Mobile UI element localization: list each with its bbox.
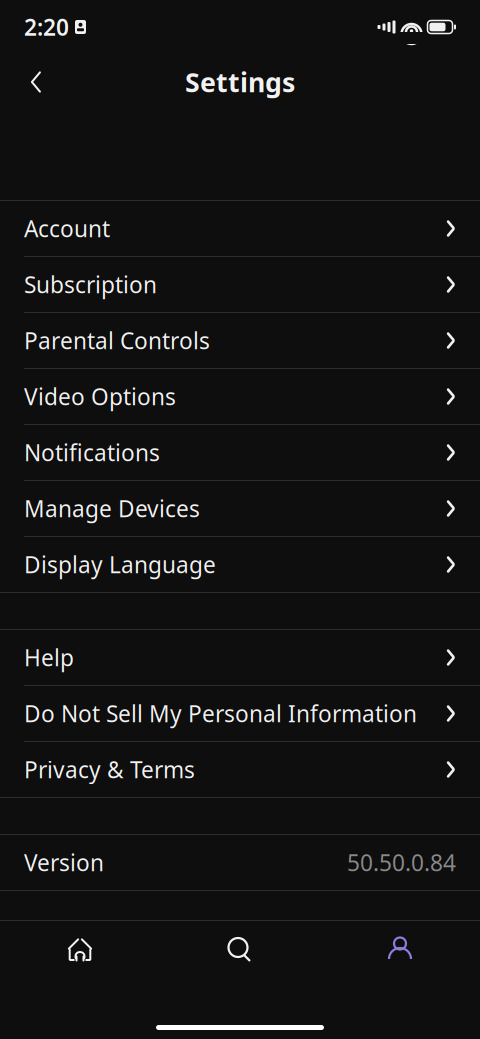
staticText: Help: [24, 642, 74, 672]
button[interactable]: Manage Devices: [0, 481, 480, 536]
button[interactable]: Parental Controls: [0, 313, 480, 368]
staticText: Video Options: [24, 381, 176, 411]
button[interactable]: Notifications: [0, 425, 480, 480]
staticText: Notifications: [24, 437, 160, 467]
staticText: Account: [24, 213, 110, 243]
staticText: Version: [24, 847, 104, 877]
button[interactable]: Privacy & Terms: [0, 742, 480, 797]
button[interactable]: Home: [0, 921, 160, 979]
staticText: 50.50.0.84: [347, 847, 456, 877]
button[interactable]: Profile: [320, 921, 480, 979]
staticText: Manage Devices: [24, 493, 200, 523]
staticText: Display Language: [24, 549, 216, 579]
button[interactable]: Subscription: [0, 257, 480, 312]
staticText: Do Not Sell My Personal Information: [24, 698, 417, 728]
staticText: Subscription: [24, 269, 157, 299]
button[interactable]: Do Not Sell My Personal Information: [0, 686, 480, 741]
staticText: Privacy & Terms: [24, 754, 195, 784]
button[interactable]: Search: [160, 921, 320, 979]
staticText: Settings: [185, 64, 295, 100]
button[interactable]: Help: [0, 630, 480, 685]
button[interactable]: Back: [14, 60, 58, 104]
staticText: Parental Controls: [24, 325, 210, 355]
staticText: 2:20: [24, 12, 69, 42]
button[interactable]: Account: [0, 201, 480, 256]
button[interactable]: Video Options: [0, 369, 480, 424]
button[interactable]: Display Language: [0, 537, 480, 592]
